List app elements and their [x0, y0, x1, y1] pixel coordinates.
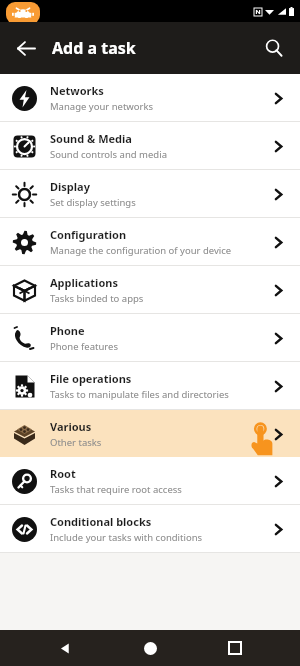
staticText: Phone — [50, 323, 85, 338]
staticText: Root — [50, 466, 76, 481]
button[interactable]: Sound & Media — [0, 122, 300, 169]
staticText: File operations — [50, 371, 132, 386]
staticText: Conditional blocks — [50, 514, 152, 529]
staticText: Display — [50, 179, 90, 194]
staticText: Tasks binded to apps — [50, 292, 144, 305]
button[interactable]: Phone — [0, 314, 300, 361]
staticText: Sound controls and media — [50, 148, 167, 161]
button[interactable]: Display — [0, 170, 300, 217]
button[interactable]: Conditional blocks — [0, 505, 300, 552]
button[interactable]: Configuration — [0, 218, 300, 265]
staticText: Networks — [50, 83, 104, 98]
button[interactable]: Recents — [215, 630, 255, 666]
button[interactable]: Back — [45, 630, 85, 666]
staticText: Configuration — [50, 227, 127, 242]
staticText: Sound & Media — [50, 131, 132, 146]
staticText: Tasks that require root access — [50, 483, 182, 496]
button[interactable]: Applications — [0, 266, 300, 313]
staticText: Add a task — [52, 37, 136, 59]
button[interactable]: Home — [130, 630, 170, 666]
button[interactable]: Networks — [0, 74, 300, 121]
staticText: Other tasks — [50, 436, 102, 449]
button[interactable]: Root — [0, 457, 300, 504]
staticText: Set display settings — [50, 196, 136, 209]
button[interactable]: Various — [0, 410, 300, 457]
staticText: Phone features — [50, 340, 118, 353]
staticText: Include your tasks with conditions — [50, 531, 203, 544]
staticText: Applications — [50, 275, 118, 290]
staticText: Manage your networks — [50, 100, 154, 113]
staticText: Manage the configuration of your device — [50, 244, 232, 257]
other: App icon — [6, 2, 40, 24]
button[interactable]: Search — [256, 30, 292, 66]
button[interactable]: Back — [8, 30, 44, 66]
button[interactable]: File operations — [0, 362, 300, 409]
staticText: Various — [50, 419, 92, 434]
staticText: Tasks to manipulate files and directorie… — [50, 388, 229, 401]
